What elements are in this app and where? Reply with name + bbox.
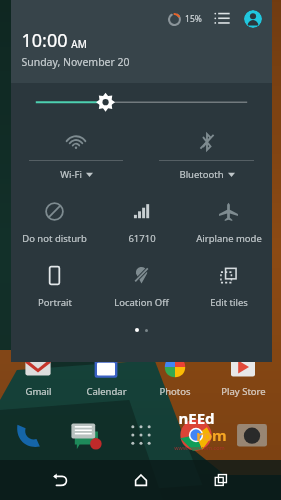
button[interactable]: Bluetooth (141, 123, 272, 185)
button[interactable]: Calendar (75, 352, 137, 398)
button[interactable]: Settings list (214, 11, 230, 27)
button[interactable]: Gmail (7, 352, 69, 398)
button[interactable]: Brightness (11, 83, 272, 123)
staticText: Sunday, November 20 (21, 55, 130, 69)
button[interactable]: Battery (168, 13, 181, 26)
button[interactable]: Recents (201, 460, 241, 500)
staticText: Gmail (25, 385, 52, 398)
button[interactable]: Portrait (11, 255, 98, 319)
staticText: 10:00 (21, 28, 68, 53)
button[interactable]: 61710 (98, 191, 185, 255)
staticText: Edit tiles (210, 296, 248, 309)
button[interactable]: Chrome (179, 418, 213, 452)
staticText: Wi-Fi (60, 168, 82, 181)
button[interactable]: Do not disturb (11, 191, 98, 255)
staticText: Airplane mode (196, 232, 262, 245)
button[interactable]: All apps (124, 418, 158, 452)
button[interactable]: Home (121, 460, 161, 500)
staticText: nEEd (178, 408, 215, 428)
button[interactable]: Messages (68, 418, 102, 452)
staticText: www.needrom.com (174, 444, 225, 451)
staticText: Location Off (114, 296, 169, 309)
button[interactable]: Wi-Fi (11, 123, 141, 185)
staticText: Calendar (86, 385, 127, 398)
staticText: 15% (185, 13, 202, 25)
button[interactable]: Edit tiles (185, 255, 272, 319)
staticText: 61710 (128, 232, 156, 245)
button[interactable]: Airplane mode (185, 191, 272, 255)
staticText: Portrait (38, 296, 72, 309)
button[interactable]: Photos (144, 352, 206, 398)
button[interactable]: User (244, 10, 262, 28)
button[interactable]: Camera (235, 418, 269, 452)
button[interactable]: Phone (12, 418, 46, 452)
button[interactable]: Location Off (98, 255, 185, 319)
staticText: Do not disturb (22, 232, 87, 245)
staticText: AM (71, 37, 87, 51)
button[interactable]: Back (40, 460, 80, 500)
staticText: rom (196, 425, 227, 445)
staticText: Bluetooth (179, 168, 224, 181)
staticText: Play Store (221, 385, 266, 398)
staticText: Photos (159, 385, 191, 398)
button[interactable]: Play Store (212, 352, 274, 398)
